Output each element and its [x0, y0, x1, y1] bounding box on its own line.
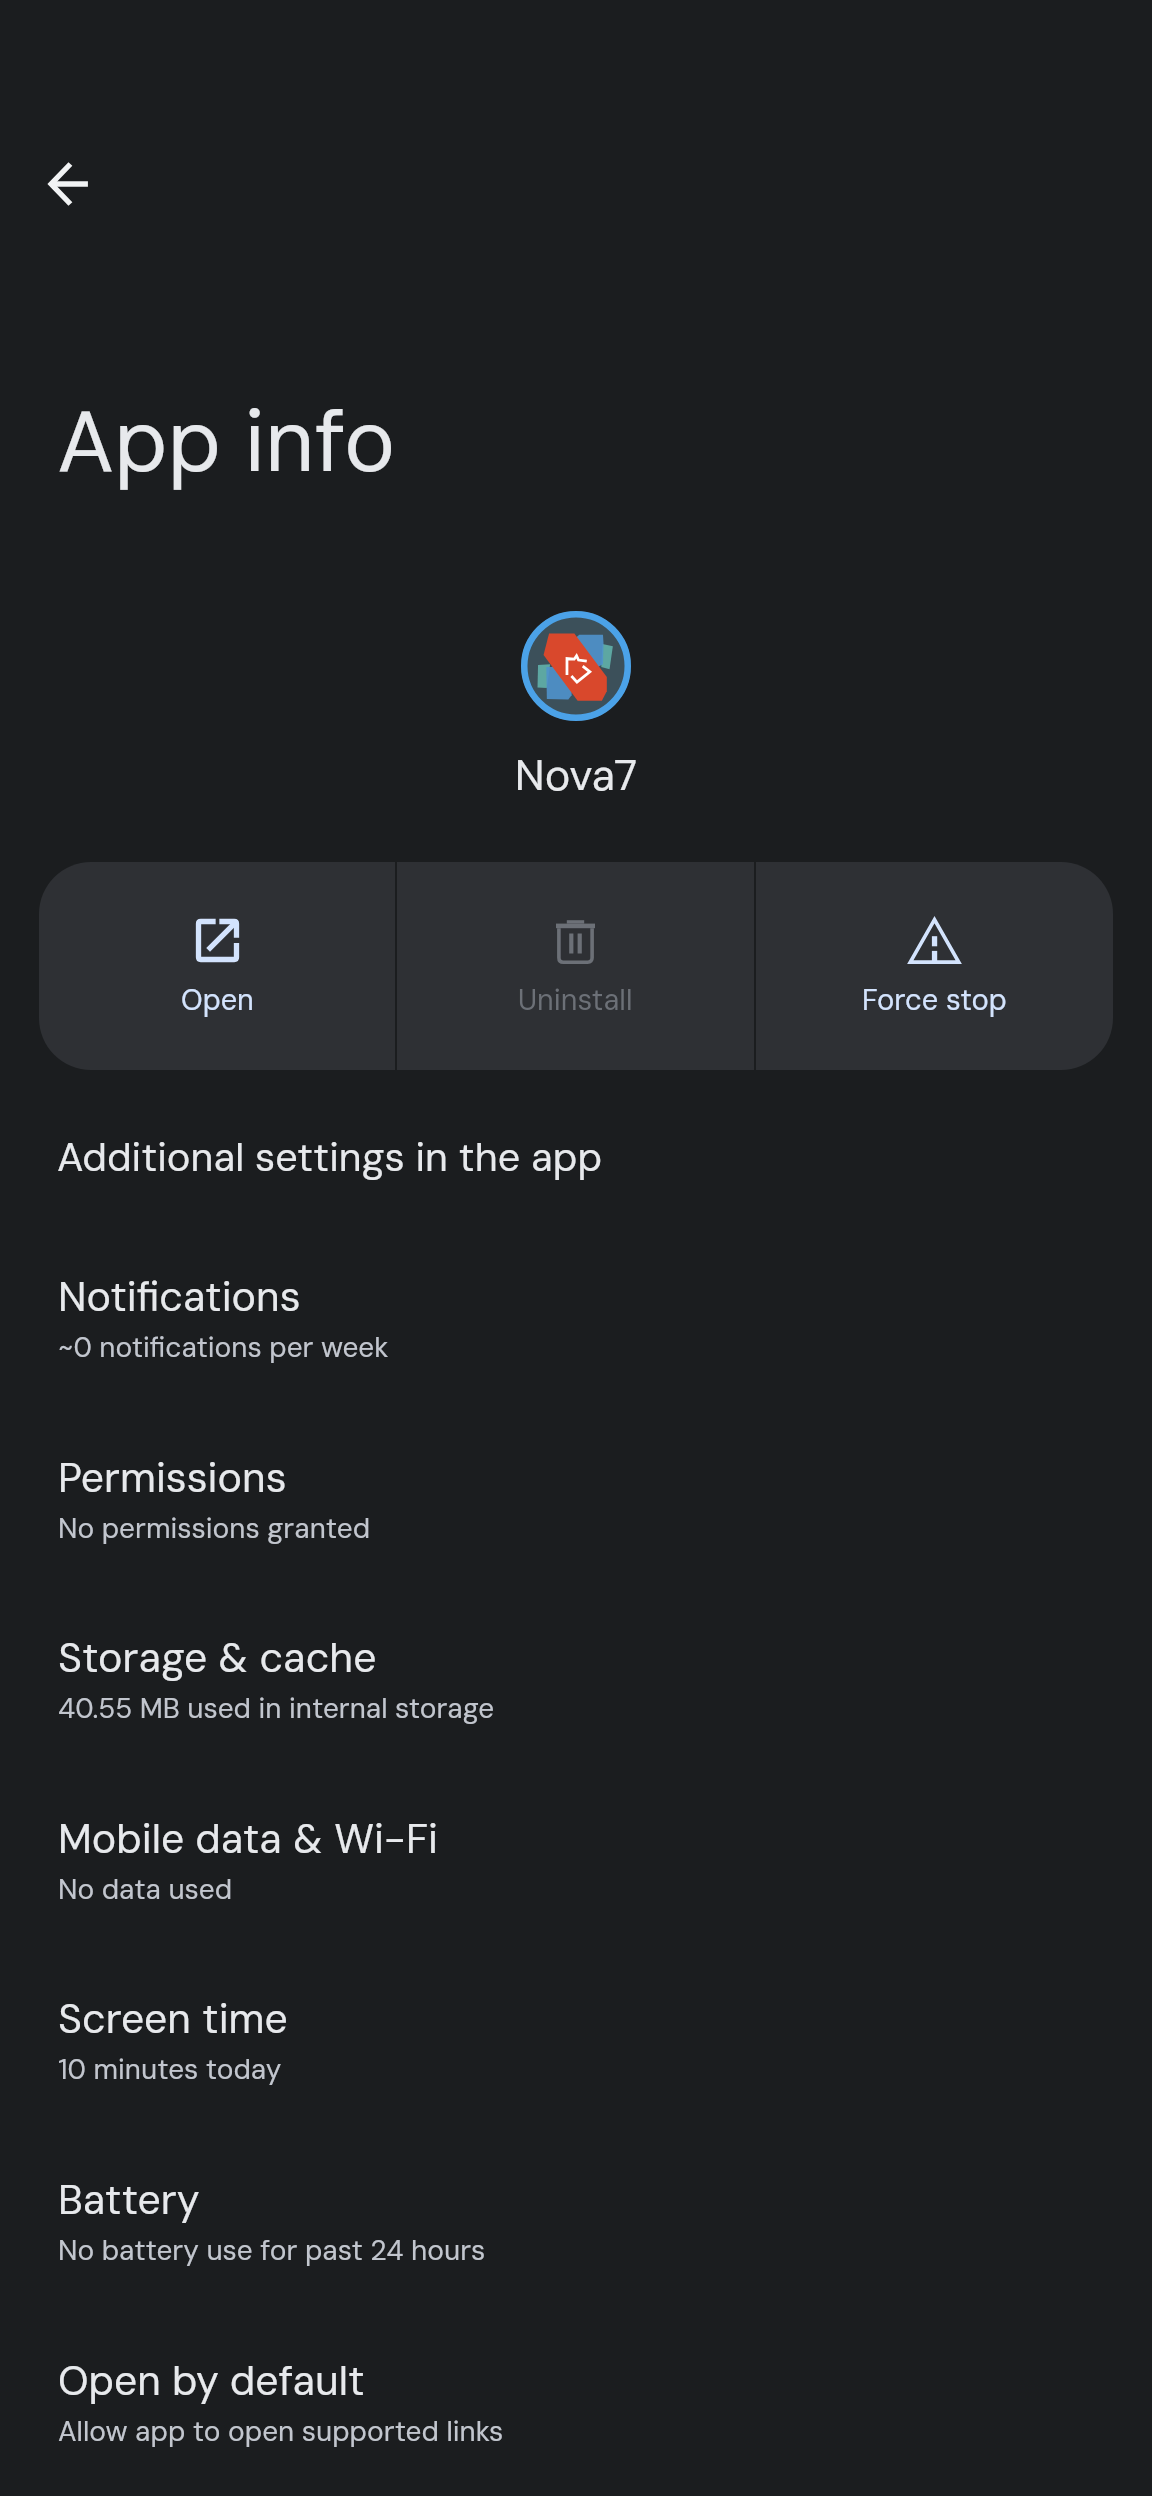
button[interactable]: Battery: [0, 2143, 1152, 2313]
button[interactable]: Mobile data & Wi-Fi: [0, 1782, 1152, 1952]
button[interactable]: Back: [20, 136, 116, 232]
button[interactable]: Open by default: [0, 2324, 1152, 2494]
staticText: Battery: [58, 2173, 200, 2226]
staticText: Nova7: [0, 747, 1152, 803]
button[interactable]: Open: [39, 862, 395, 1070]
staticText: 40.55 MB used in internal storage: [58, 1690, 495, 1726]
staticText: Storage & cache: [58, 1631, 377, 1684]
staticText: No permissions granted: [58, 1510, 371, 1546]
button[interactable]: Screen time: [0, 1962, 1152, 2132]
staticText: Screen time: [58, 1992, 288, 2045]
staticText: No data used: [58, 1871, 233, 1907]
staticText: Force stop: [862, 981, 1007, 1019]
button[interactable]: Additional settings in the app: [0, 1101, 1152, 1181]
button[interactable]: Permissions: [0, 1421, 1152, 1591]
button[interactable]: Force stop: [756, 862, 1113, 1070]
staticText: Open: [181, 981, 254, 1019]
staticText: Open by default: [58, 2354, 365, 2407]
staticText: 10 minutes today: [58, 2051, 282, 2087]
staticText: Allow app to open supported links: [58, 2413, 504, 2449]
staticText: Notifications: [58, 1270, 301, 1323]
staticText: Uninstall: [518, 981, 633, 1019]
staticText: Additional settings in the app: [57, 1132, 603, 1184]
button[interactable]: Storage & cache: [0, 1601, 1152, 1771]
staticText: App info: [57, 386, 396, 498]
staticText: ~0 notifications per week: [58, 1329, 389, 1365]
staticText: Permissions: [58, 1451, 287, 1504]
staticText: Mobile data & Wi-Fi: [58, 1812, 438, 1865]
button[interactable]: Uninstall: [397, 862, 754, 1070]
button[interactable]: Notifications: [0, 1240, 1152, 1410]
staticText: No battery use for past 24 hours: [58, 2232, 486, 2268]
